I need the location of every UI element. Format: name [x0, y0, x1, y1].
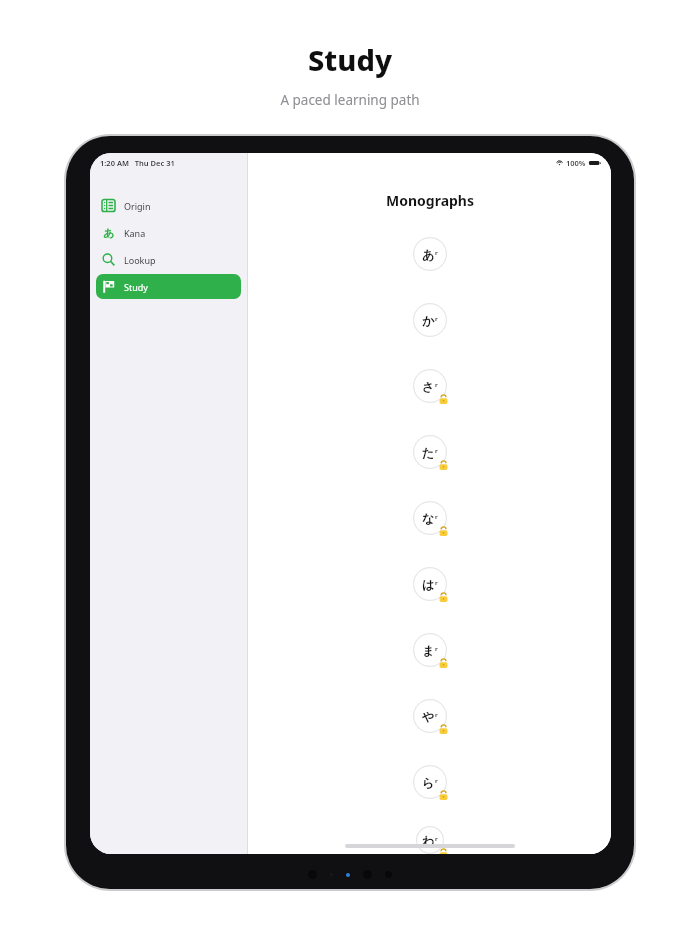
button[interactable]: た	[408, 430, 452, 474]
button[interactable]: さ	[408, 364, 452, 408]
button[interactable]: Study	[96, 274, 241, 299]
staticText: さ	[422, 379, 435, 394]
button[interactable]: わ	[408, 826, 452, 854]
other: Locked	[438, 394, 449, 405]
other: Locked	[438, 460, 449, 471]
button[interactable]: な	[408, 496, 452, 540]
staticText: は	[422, 577, 435, 592]
staticText: Kana	[124, 227, 146, 239]
staticText: あ	[103, 226, 115, 239]
staticText: Study	[124, 281, 148, 293]
staticText: あ	[422, 247, 435, 262]
button[interactable]: Origin	[96, 193, 241, 218]
button[interactable]: や	[408, 694, 452, 738]
staticText: ま	[422, 643, 435, 658]
staticText: な	[422, 511, 435, 526]
staticText: わ	[422, 833, 435, 848]
staticText: Lookup	[124, 254, 156, 266]
staticText: r	[435, 835, 438, 843]
button[interactable]: あ	[96, 220, 241, 245]
staticText: r	[435, 315, 438, 323]
staticText: ら	[422, 775, 435, 790]
other: Locked	[438, 658, 449, 669]
staticText: r	[435, 777, 438, 785]
staticText: r	[435, 711, 438, 719]
other: Locked	[438, 526, 449, 537]
staticText: 100%	[566, 158, 586, 168]
staticText: r	[435, 381, 438, 389]
staticText: Study	[308, 40, 392, 79]
staticText: A paced learning path	[280, 91, 420, 109]
other: Locked	[438, 724, 449, 735]
other: Locked	[438, 790, 449, 801]
staticText: か	[422, 313, 435, 328]
button[interactable]: ま	[408, 628, 452, 672]
staticText: た	[422, 445, 435, 460]
button[interactable]: あ	[408, 232, 452, 276]
button[interactable]: Lookup	[96, 247, 241, 272]
other: Locked	[438, 848, 449, 854]
other: Locked	[438, 592, 449, 603]
staticText: r	[435, 513, 438, 521]
staticText: r	[435, 447, 438, 455]
button[interactable]: は	[408, 562, 452, 606]
staticText: や	[422, 709, 435, 724]
staticText: r	[435, 579, 438, 587]
staticText: Origin	[124, 200, 151, 212]
staticText: r	[435, 645, 438, 653]
staticText: Monographs	[386, 191, 474, 210]
staticText: r	[435, 249, 438, 257]
button[interactable]: か	[408, 298, 452, 342]
button[interactable]: ら	[408, 760, 452, 804]
staticText: 1:20 AM Thu Dec 31	[100, 158, 175, 168]
